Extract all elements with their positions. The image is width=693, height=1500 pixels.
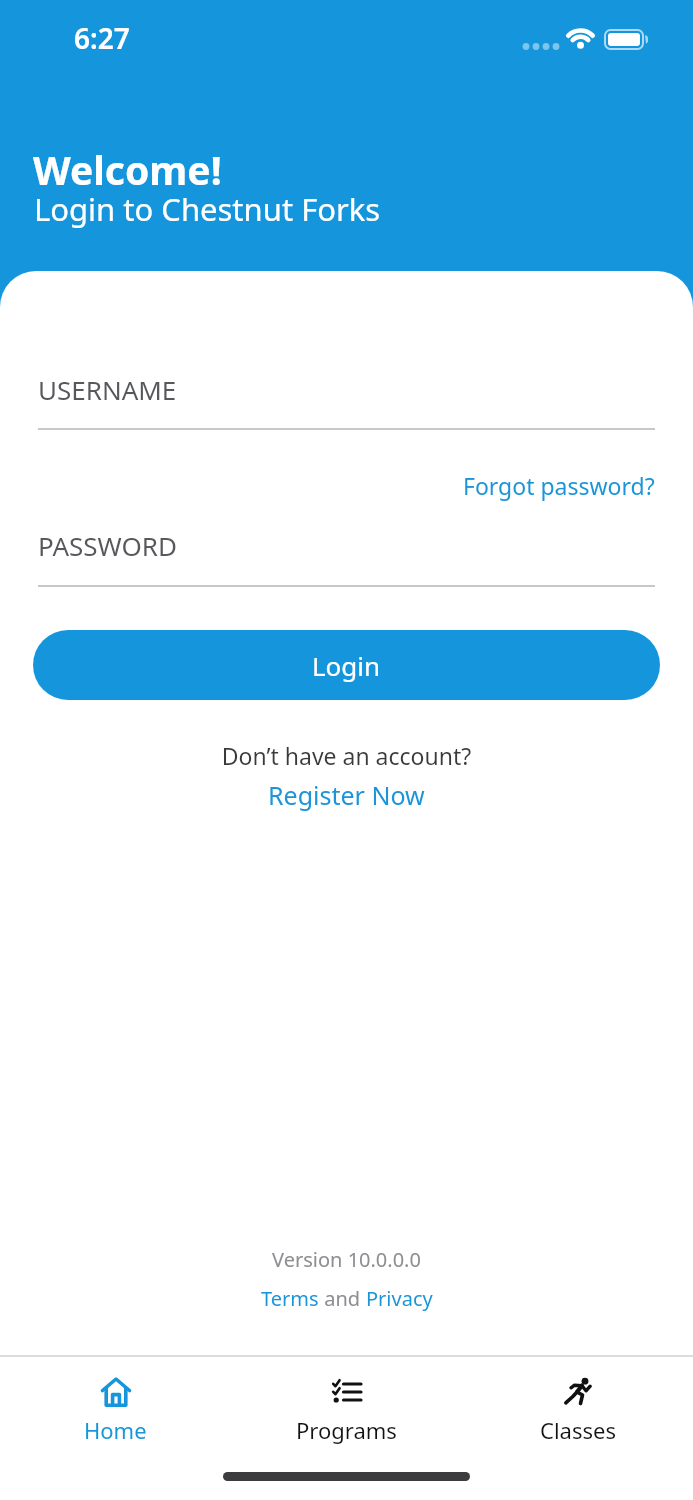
button[interactable]: USERNAME [38, 372, 655, 407]
staticText: Home [84, 1415, 147, 1445]
button[interactable]: Forgot password? [463, 470, 655, 501]
staticText: Welcome! [33, 143, 222, 196]
button[interactable]: Programs [231, 1357, 462, 1500]
staticText: Programs [296, 1415, 397, 1445]
staticText: Version 10.0.0.0 [38, 1246, 655, 1273]
button[interactable]: Classes [462, 1357, 693, 1500]
button[interactable]: Register Now [268, 778, 425, 812]
staticText: Classes [540, 1415, 616, 1445]
staticText: and [319, 1285, 366, 1312]
button[interactable]: Home [0, 1357, 231, 1500]
button[interactable]: Privacy [366, 1285, 433, 1312]
staticText: Don’t have an account? [38, 740, 655, 771]
button[interactable]: Terms [261, 1285, 319, 1312]
staticText: Login to Chestnut Forks [34, 188, 381, 230]
staticText: Login [312, 648, 381, 683]
button[interactable]: Login [33, 630, 660, 700]
button[interactable]: PASSWORD [38, 528, 655, 563]
staticText: 6:27 [74, 19, 130, 57]
